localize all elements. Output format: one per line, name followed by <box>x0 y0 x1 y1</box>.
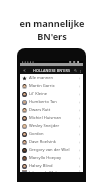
staticText: BN'ers <box>37 30 67 43</box>
button[interactable]: Dwars Rutt <box>20 106 83 114</box>
staticText: Dave Roelvink <box>29 139 56 145</box>
staticText: Dwars Rutt <box>29 107 51 113</box>
staticText: Gregory van der Wiel <box>29 147 70 153</box>
staticText: Halsey Blind <box>29 163 53 169</box>
button[interactable]: Dave Roelvink <box>20 138 83 146</box>
staticText: Martin Garrix <box>29 83 55 89</box>
button[interactable]: Lil' Kleine <box>20 90 83 98</box>
button[interactable]: Halsey Blind <box>20 162 83 170</box>
button[interactable]: Martin Garrix <box>20 82 83 90</box>
button[interactable]: Johnny de Mol <box>20 170 83 172</box>
staticText: Marcyllo Hoepoy <box>29 155 62 161</box>
button[interactable]: Back <box>21 66 27 74</box>
button[interactable]: Wesley Sneijder <box>20 122 83 130</box>
button[interactable]: Michiel Huisman <box>20 114 83 122</box>
button[interactable]: Gordon <box>20 130 83 138</box>
staticText: Johnny de Mol <box>29 170 57 172</box>
staticText: Wesley Sneijder <box>29 123 60 129</box>
button[interactable]: Marcyllo Hoepoy <box>20 154 83 162</box>
button[interactable]: Search <box>73 68 78 73</box>
staticText: en mannelijke <box>19 17 85 30</box>
button[interactable]: Alle mannen <box>20 74 83 82</box>
button[interactable]: More options <box>78 69 82 73</box>
button[interactable]: Gregory van der Wiel <box>20 146 83 154</box>
staticText: Humberto Tan <box>29 99 57 105</box>
button[interactable]: Humberto Tan <box>20 98 83 106</box>
staticText: Alle mannen <box>29 75 54 81</box>
staticText: HOLLANDSE BN'ERS <box>33 68 71 73</box>
staticText: Lil' Kleine <box>29 91 48 97</box>
staticText: Michiel Huisman <box>29 115 61 121</box>
staticText: Gordon <box>29 131 44 137</box>
